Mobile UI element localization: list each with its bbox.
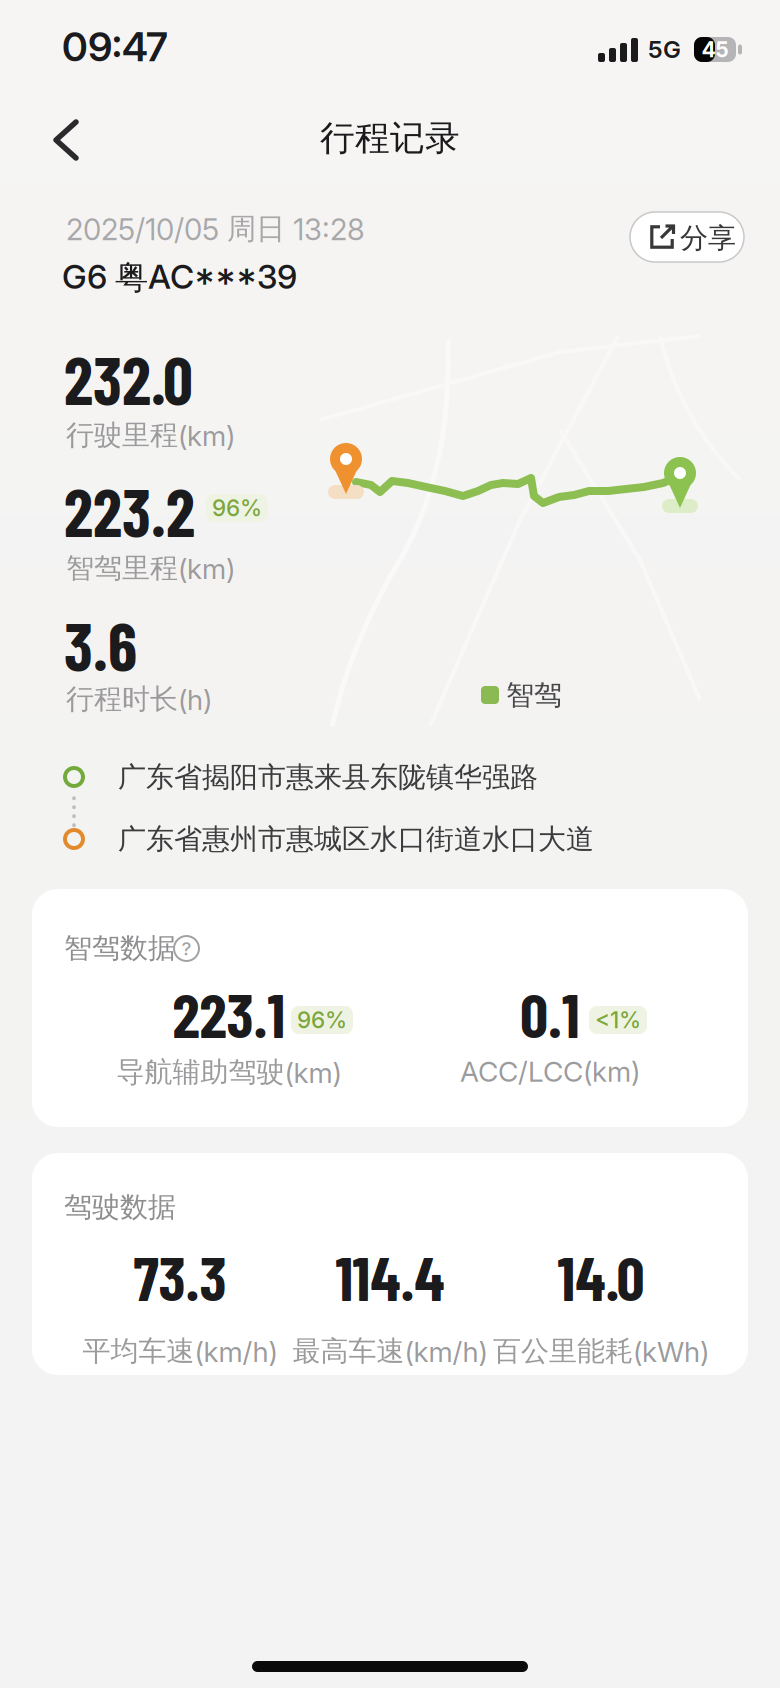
staticText: 5G [648, 35, 681, 63]
staticText: ACC/LCC(km) [460, 1055, 640, 1088]
staticText: <1% [595, 1007, 641, 1033]
staticText: 09:47 [62, 23, 168, 70]
staticText: 行程时长(h) [66, 682, 212, 716]
button[interactable]: 分享 [630, 212, 744, 262]
staticText: G6 粤AC***39 [62, 257, 297, 298]
staticText: 导航辅助驾驶(km) [116, 1055, 341, 1089]
staticText: 96% [297, 1007, 347, 1033]
staticText: 223.1 [172, 976, 285, 1050]
staticText: 232.0 [64, 339, 193, 418]
staticText: 百公里能耗(kWh) [493, 1334, 709, 1368]
staticText: 行驶里程(km) [66, 418, 235, 452]
staticText: 智驾数据 [64, 931, 176, 965]
staticText: ? [181, 937, 191, 959]
staticText: 2025/10/05 周日 13:28 [66, 211, 365, 247]
staticText: 行程记录 [320, 117, 460, 160]
button[interactable]: ? [174, 936, 199, 961]
button[interactable] [30, 104, 102, 176]
staticText: 广东省揭阳市惠来县东陇镇华强路 [118, 760, 538, 794]
staticText: 96% [212, 495, 262, 521]
staticText: 智驾里程(km) [66, 551, 235, 585]
staticText: 分享 [680, 221, 736, 255]
staticText: 广东省惠州市惠城区水口街道水口大道 [118, 822, 594, 856]
staticText: 智驾 [506, 678, 562, 712]
staticText: 114.4 [335, 1239, 444, 1313]
staticText: 3.6 [64, 605, 137, 684]
staticText: 73.3 [133, 1239, 226, 1313]
staticText: 平均车速(km/h) [82, 1334, 277, 1368]
staticText: 14.0 [557, 1239, 644, 1313]
staticText: 45 [701, 37, 728, 62]
staticText: 驾驶数据 [64, 1190, 176, 1224]
staticText: 223.2 [64, 471, 195, 550]
staticText: 最高车速(km/h) [292, 1334, 487, 1368]
staticText: 0.1 [520, 976, 580, 1050]
